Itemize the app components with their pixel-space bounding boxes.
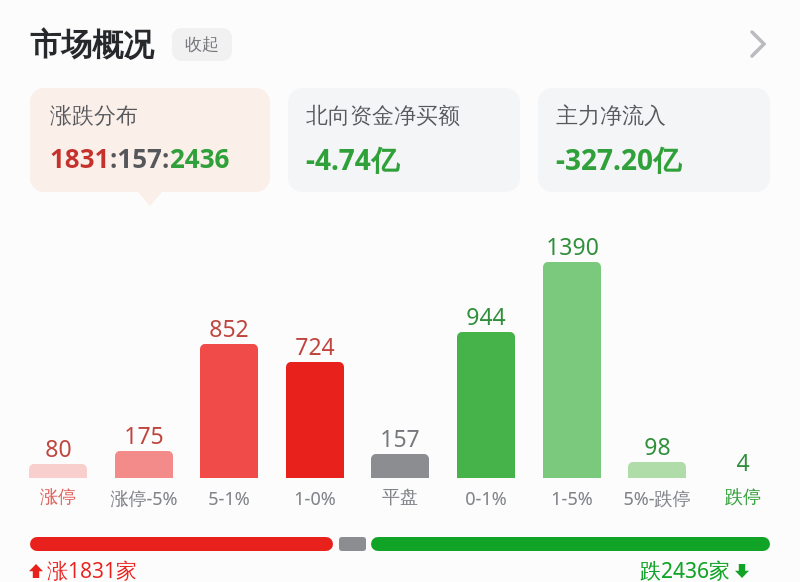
- staticText: 724: [295, 330, 335, 361]
- staticText: 157: [380, 422, 420, 453]
- staticText: 2436: [170, 140, 230, 175]
- staticText: -4.74亿: [306, 140, 399, 178]
- staticText: 1-5%: [551, 486, 593, 511]
- staticText: 0-1%: [465, 486, 507, 511]
- button[interactable]: 涨跌分布: [30, 88, 270, 192]
- staticText: 80: [45, 432, 72, 463]
- staticText: 平盘: [382, 486, 418, 509]
- staticText: 5-1%: [208, 486, 250, 511]
- staticText: 市场概况: [30, 25, 154, 64]
- staticText: 跌2436家: [640, 556, 731, 582]
- staticText: 944: [466, 300, 506, 331]
- button[interactable]: More: [734, 20, 782, 68]
- staticText: 跌停: [725, 486, 761, 509]
- staticText: 收起: [185, 34, 219, 55]
- staticText: 5%-跌停: [623, 486, 691, 511]
- staticText: 4: [736, 446, 750, 477]
- staticText: 1390: [546, 230, 599, 261]
- button[interactable]: 主力净流入: [538, 88, 770, 192]
- staticText: 北向资金净买额: [306, 102, 460, 130]
- button[interactable]: 北向资金净买额: [288, 88, 520, 192]
- staticText: 涨1831家: [47, 556, 138, 582]
- staticText: 1831: [50, 140, 110, 175]
- staticText: -327.20亿: [556, 140, 681, 178]
- staticText: 175: [124, 419, 164, 450]
- staticText: 主力净流入: [556, 102, 666, 130]
- staticText: 1-0%: [294, 486, 336, 511]
- staticText: 涨停-5%: [110, 486, 178, 511]
- staticText: 涨停: [40, 486, 76, 509]
- staticText: 852: [209, 312, 249, 343]
- staticText: 98: [644, 430, 671, 461]
- button[interactable]: 收起: [172, 28, 232, 61]
- staticText: :157:: [110, 140, 170, 175]
- staticText: 涨跌分布: [50, 102, 138, 130]
